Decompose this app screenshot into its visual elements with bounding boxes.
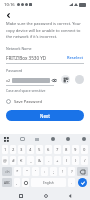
button[interactable]: Settings bbox=[65, 136, 71, 142]
staticText: 2 bbox=[12, 147, 15, 153]
button[interactable]: 2 bbox=[10, 145, 16, 154]
button[interactable]: Show password bbox=[51, 77, 57, 83]
button[interactable]: 3 bbox=[18, 145, 25, 154]
button[interactable]: & bbox=[36, 156, 43, 165]
button[interactable]: GIF bbox=[19, 136, 25, 142]
staticText: @ bbox=[3, 158, 7, 164]
button[interactable]: 9 bbox=[72, 145, 79, 154]
staticText: 6 bbox=[47, 147, 50, 153]
button[interactable]: Recents bbox=[16, 191, 25, 200]
button[interactable]: * bbox=[14, 167, 21, 176]
staticText: x2 bbox=[6, 78, 11, 83]
staticText: & bbox=[38, 158, 42, 164]
button[interactable]: 0 bbox=[81, 145, 88, 154]
button[interactable]: € bbox=[18, 156, 25, 165]
button[interactable]: Apps bbox=[3, 136, 9, 142]
button[interactable]: Emoji bbox=[22, 178, 29, 187]
staticText: Password bbox=[6, 68, 23, 73]
staticText: : bbox=[44, 169, 46, 175]
button[interactable]: Enter bbox=[78, 178, 87, 187]
button[interactable]: Backspace bbox=[77, 167, 88, 176]
button[interactable]: . bbox=[68, 178, 75, 187]
staticText: 5 bbox=[38, 147, 41, 153]
staticText: 9 bbox=[74, 147, 77, 153]
staticText: * bbox=[16, 169, 19, 175]
staticText: _ bbox=[30, 158, 32, 164]
button[interactable]: 4 bbox=[27, 145, 34, 154]
staticText: " bbox=[26, 169, 28, 175]
staticText: Make sure the password is correct. Your … bbox=[6, 21, 84, 39]
button[interactable]: Back bbox=[3, 10, 13, 20]
staticText: Network Name bbox=[6, 46, 32, 51]
button[interactable]: ( bbox=[63, 156, 70, 165]
button[interactable]: _ bbox=[27, 156, 34, 165]
staticText: 4 bbox=[29, 147, 32, 153]
button[interactable]: @ bbox=[2, 156, 8, 165]
button[interactable]: ! bbox=[59, 167, 66, 176]
staticText: ! bbox=[62, 169, 64, 175]
button[interactable]: ? bbox=[68, 167, 75, 176]
button[interactable]: Reselect bbox=[66, 54, 84, 61]
button[interactable]: 1 bbox=[2, 145, 8, 154]
button[interactable]: Scan QR code bbox=[61, 75, 70, 84]
staticText: € bbox=[20, 158, 23, 164]
staticText: Next bbox=[40, 113, 50, 119]
button[interactable]: Back bbox=[65, 191, 74, 200]
staticText: + bbox=[56, 158, 59, 164]
staticText: Reselect bbox=[67, 55, 83, 60]
button[interactable]: 6 bbox=[45, 145, 52, 154]
button[interactable]: + bbox=[54, 156, 61, 165]
button[interactable]: 5 bbox=[36, 145, 43, 154]
staticText: 3 bbox=[20, 147, 23, 153]
button[interactable]: Save Password bbox=[6, 98, 84, 105]
staticText: - bbox=[48, 158, 50, 164]
staticText: Save Password bbox=[14, 99, 42, 104]
button[interactable]: Theme bbox=[81, 136, 87, 142]
button[interactable]: More options bbox=[75, 75, 84, 84]
staticText: Case and space sensitive bbox=[6, 88, 46, 93]
staticText: 8 bbox=[65, 147, 68, 153]
button[interactable]: : bbox=[41, 167, 48, 176]
button[interactable]: / bbox=[81, 156, 88, 165]
staticText: 7 bbox=[56, 147, 59, 153]
staticText: / bbox=[84, 158, 86, 164]
button[interactable]: 8 bbox=[63, 145, 70, 154]
button[interactable]: =\< bbox=[2, 167, 12, 176]
staticText: English bbox=[43, 181, 54, 185]
button[interactable]: Clipboard bbox=[50, 136, 56, 142]
button[interactable]: Space bbox=[31, 178, 66, 187]
button[interactable]: 7 bbox=[54, 145, 61, 154]
button[interactable]: # bbox=[10, 156, 16, 165]
staticText: 1 bbox=[4, 147, 7, 153]
staticText: ? bbox=[71, 169, 73, 175]
staticText: =\< bbox=[5, 170, 10, 174]
button[interactable]: - bbox=[45, 156, 52, 165]
staticText: ABC bbox=[4, 181, 11, 185]
staticText: , bbox=[16, 180, 18, 186]
button[interactable]: , bbox=[14, 178, 20, 187]
staticText: . bbox=[71, 180, 73, 186]
staticText: ' bbox=[35, 169, 36, 175]
staticText: # bbox=[12, 158, 15, 164]
button[interactable]: ; bbox=[50, 167, 57, 176]
button[interactable]: Next bbox=[6, 110, 84, 121]
staticText: ; bbox=[53, 169, 55, 175]
staticText: ( bbox=[66, 158, 68, 164]
button[interactable]: " bbox=[23, 167, 30, 176]
staticText: FRITZ!Box 3530 YD bbox=[6, 55, 47, 61]
button[interactable]: ABC bbox=[2, 178, 12, 187]
button[interactable]: ) bbox=[72, 156, 79, 165]
button[interactable]: Home bbox=[41, 191, 50, 200]
staticText: 0 bbox=[83, 147, 86, 153]
button[interactable]: Translate bbox=[34, 136, 40, 142]
staticText: 10:16 bbox=[4, 2, 15, 8]
staticText: ) bbox=[75, 158, 77, 164]
button[interactable]: ' bbox=[32, 167, 39, 176]
